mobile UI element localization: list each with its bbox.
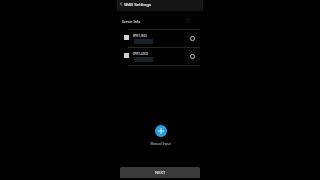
button[interactable]: Back [117,0,125,8]
staticText: FPR1.L003 [133,52,148,56]
button[interactable]: Info [183,16,192,25]
staticText: NEXT [155,170,166,176]
staticText: SMB Settings [124,1,151,7]
staticText: FPR1.H03 [133,34,147,38]
button[interactable]: NEXT [120,167,200,178]
button[interactable]: FPR1.H03 [117,30,203,47]
button[interactable]: FPR1.L003 [117,48,203,65]
staticText: Manual Input [150,142,171,146]
staticText: Server Info [122,19,141,23]
button[interactable]: Manual input [155,125,167,137]
